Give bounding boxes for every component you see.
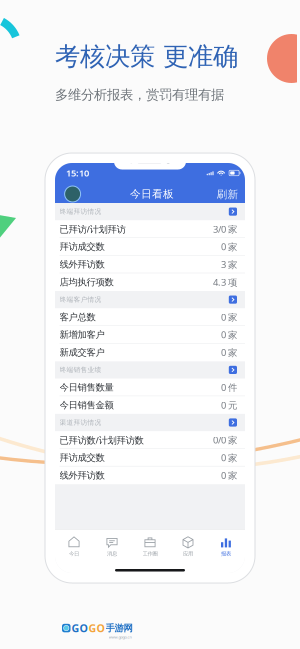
staticText: 终端拜访情况 — [59, 207, 101, 216]
button[interactable]: 新成交客户 — [55, 344, 245, 361]
button[interactable]: 终端销售业绩 详情 — [229, 366, 237, 374]
button[interactable]: 今日 — [55, 529, 93, 562]
staticText: 0 家 — [221, 346, 237, 359]
staticText: 客户总数 — [59, 311, 95, 323]
staticText: 0 家 — [221, 469, 237, 482]
staticText: 0 元 — [221, 399, 237, 411]
button[interactable]: 新增加客户 — [55, 326, 245, 344]
staticText: 线外拜访数 — [59, 259, 104, 270]
button[interactable]: 今日销售金额 — [55, 396, 245, 414]
button[interactable]: 刷新 — [211, 184, 243, 205]
staticText: 3/0 家 — [213, 223, 237, 235]
button[interactable]: 已拜访数/计划拜访数 — [55, 431, 245, 449]
staticText: 3 家 — [221, 258, 237, 271]
button[interactable]: 线外拜访数 — [55, 466, 245, 484]
staticText: GO — [71, 621, 87, 635]
staticText: 手游网 — [105, 622, 132, 634]
staticText: 终端销售业绩 — [59, 366, 101, 374]
button[interactable]: 线外拜访数 — [55, 256, 245, 273]
staticText: 新成交客户 — [59, 347, 104, 358]
button[interactable]: 工作圈 — [131, 529, 169, 562]
button[interactable]: 应用 — [169, 529, 207, 562]
staticText: 0 家 — [221, 311, 237, 323]
button[interactable]: 消息 — [93, 529, 131, 562]
staticText: 0/0 家 — [213, 434, 237, 446]
staticText: www.gogo.cn — [108, 634, 131, 640]
staticText: 新增加客户 — [59, 329, 104, 340]
staticText: 渠道拜访情况 — [59, 418, 101, 427]
staticText: 工作圈 — [142, 550, 157, 557]
staticText: 0 家 — [221, 451, 237, 464]
staticText: 今日看板 — [130, 187, 174, 200]
staticText: GO — [88, 621, 104, 635]
button[interactable]: 拜访成交数 — [55, 238, 245, 256]
button[interactable]: 客户总数 — [55, 308, 245, 326]
button[interactable]: 已拜访/计划拜访 — [55, 220, 245, 238]
staticText: 报表 — [221, 550, 231, 557]
button[interactable]: 终端拜访情况 详情 — [229, 207, 237, 216]
staticText: 考核决策 更准确 — [55, 41, 238, 72]
staticText: 店均执行项数 — [59, 276, 113, 288]
staticText: 15:10 — [66, 167, 89, 179]
staticText: 多维分析报表，赏罚有理有据 — [55, 87, 224, 103]
staticText: 线外拜访数 — [59, 470, 104, 481]
staticText: 拜访成交数 — [59, 241, 104, 252]
button[interactable]: 店均执行项数 — [55, 273, 245, 291]
staticText: 0 件 — [221, 381, 237, 394]
staticText: 今日销售金额 — [59, 399, 113, 411]
staticText: 消息 — [107, 550, 117, 557]
button[interactable]: 终端客户情况 详情 — [229, 295, 237, 304]
button[interactable]: 拜访成交数 — [55, 449, 245, 466]
button[interactable]: 报表 — [207, 529, 245, 562]
staticText: 拜访成交数 — [59, 452, 104, 463]
staticText: 终端客户情况 — [59, 295, 101, 304]
staticText: 0 家 — [221, 329, 237, 341]
staticText: 0 家 — [221, 241, 237, 253]
staticText: 已拜访数/计划拜访数 — [59, 434, 143, 446]
staticText: 4.3 项 — [213, 276, 237, 288]
staticText: 已拜访/计划拜访 — [59, 223, 125, 235]
button[interactable]: 今日销售数量 — [55, 378, 245, 396]
staticText: 今日销售数量 — [59, 382, 113, 393]
staticText: 刷新 — [216, 188, 238, 201]
staticText: 今日 — [69, 550, 79, 557]
staticText: 应用 — [183, 550, 193, 557]
button[interactable]: 渠道拜访情况 详情 — [229, 418, 237, 427]
button[interactable]: Profile — [62, 183, 84, 205]
